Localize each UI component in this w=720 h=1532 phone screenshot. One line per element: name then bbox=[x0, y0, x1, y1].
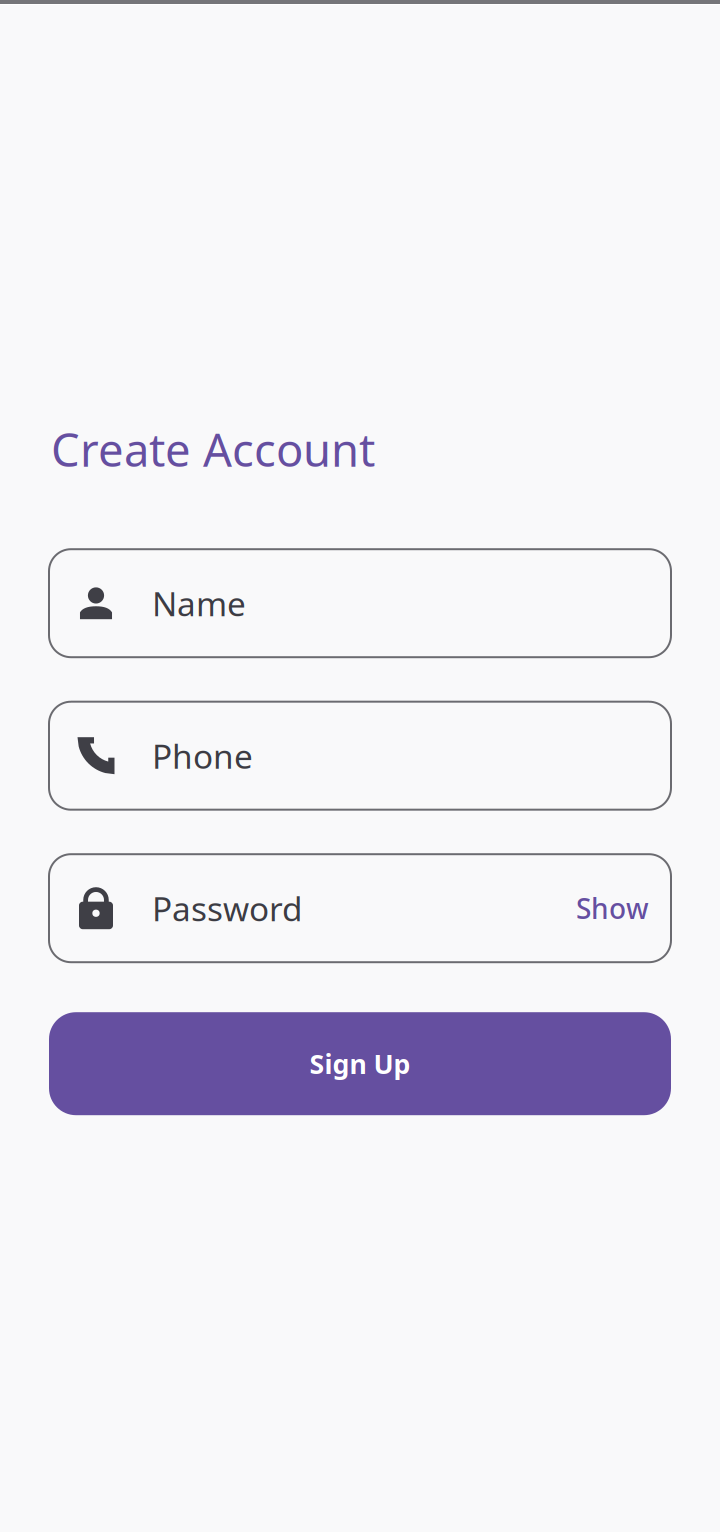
button[interactable]: Name bbox=[49, 549, 671, 657]
staticText: Phone bbox=[152, 734, 253, 778]
button[interactable]: Password bbox=[49, 854, 671, 962]
button[interactable]: Phone bbox=[49, 702, 671, 810]
staticText: Show bbox=[576, 890, 649, 927]
staticText: Sign Up bbox=[309, 1046, 410, 1081]
button[interactable]: Sign Up bbox=[49, 1012, 671, 1115]
staticText: Password bbox=[152, 886, 303, 930]
staticText: Name bbox=[152, 581, 246, 625]
button[interactable]: Show bbox=[576, 890, 649, 927]
staticText: Create Account bbox=[51, 419, 375, 479]
